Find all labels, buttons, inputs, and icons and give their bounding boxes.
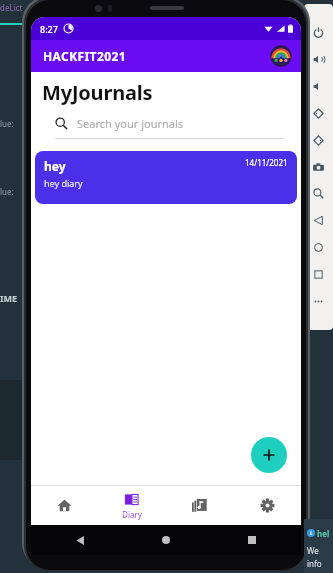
staticText: Diary <box>122 509 142 520</box>
button[interactable]: Back <box>71 531 89 549</box>
button[interactable]: Diary <box>98 486 165 525</box>
button[interactable]: Settings <box>233 486 301 525</box>
button[interactable]: Power <box>311 25 326 40</box>
button[interactable]: Profile <box>270 45 292 67</box>
button[interactable]: Library <box>165 486 233 525</box>
staticText: IME <box>0 292 18 304</box>
button[interactable]: Volume down <box>311 79 326 94</box>
staticText: We <box>307 545 319 556</box>
button[interactable]: Back <box>311 213 326 228</box>
button[interactable]: 14/11/2021 <box>35 151 297 204</box>
button[interactable]: Home <box>31 486 98 525</box>
staticText: lue: <box>0 118 14 129</box>
staticText: hey diary <box>44 177 83 189</box>
staticText: hey <box>44 158 66 174</box>
button[interactable]: Overview <box>311 267 326 282</box>
staticText: hel <box>317 528 330 539</box>
staticText: 14/11/2021 <box>245 157 288 168</box>
button[interactable]: Recents <box>243 531 261 549</box>
button[interactable]: Zoom <box>311 186 326 201</box>
staticText: HACKFIT2021 <box>43 48 126 64</box>
staticText: 8:27 <box>40 23 58 35</box>
button[interactable]: Screenshot <box>311 160 326 175</box>
staticText: MyJournals <box>42 79 153 106</box>
button[interactable]: Home <box>311 240 326 255</box>
button[interactable]: More <box>311 294 326 309</box>
button[interactable]: Volume up <box>311 52 326 67</box>
button[interactable]: Add journal <box>251 437 287 473</box>
staticText: lue: <box>0 186 14 197</box>
button[interactable]: Rotate left <box>311 106 326 121</box>
button[interactable]: Rotate right <box>311 133 326 148</box>
staticText: Search your journals <box>77 116 184 131</box>
staticText: deLict <box>0 2 23 13</box>
staticText: info <box>307 558 322 569</box>
button[interactable]: Home <box>157 531 175 549</box>
